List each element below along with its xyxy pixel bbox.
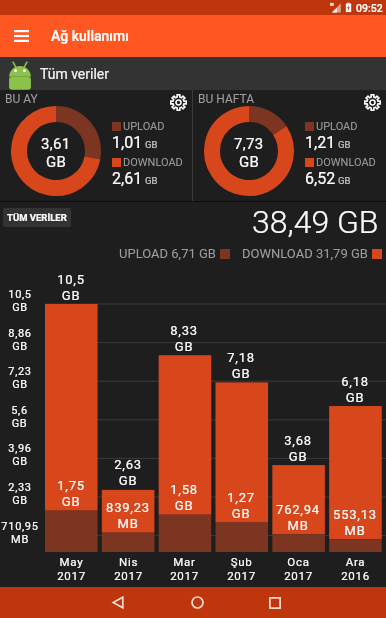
staticText: 2,33 GB xyxy=(8,481,32,507)
staticText: TÜM VERİLER xyxy=(7,212,67,223)
staticText: BU HAFTA xyxy=(198,92,255,106)
staticText: 6,18 GB xyxy=(341,374,369,405)
staticText: 1,58 GB xyxy=(170,482,198,513)
staticText: Oca 2017 xyxy=(284,555,313,583)
staticText: 38,49 GB xyxy=(252,203,379,241)
staticText: BU AY xyxy=(5,92,38,106)
staticText: 8,86 GB xyxy=(8,327,32,353)
button[interactable]: Menu xyxy=(0,15,42,57)
staticText: UPLOAD xyxy=(123,120,165,133)
staticText: GB xyxy=(145,175,158,186)
staticText: 1,75 GB xyxy=(57,478,85,509)
staticText: Ağ kullanımı xyxy=(51,28,129,44)
staticText: GB xyxy=(338,175,351,186)
staticText: GB xyxy=(338,139,351,150)
button[interactable]: Back xyxy=(96,587,140,618)
staticText: 5,6 GB xyxy=(11,404,28,430)
staticText: 2,63 GB xyxy=(114,457,142,488)
button[interactable]: Home xyxy=(175,587,219,618)
staticText: 10,5 GB xyxy=(8,288,32,314)
staticText: GB xyxy=(145,139,158,150)
staticText: 1,01 xyxy=(112,133,143,152)
staticText: UPLOAD xyxy=(316,120,358,133)
button[interactable]: TÜM VERİLER xyxy=(3,208,71,227)
staticText: 839,23 MB xyxy=(106,500,150,531)
staticText: May 2017 xyxy=(57,555,86,583)
staticText: DOWNLOAD xyxy=(123,156,183,169)
staticText: Ara 2016 xyxy=(341,555,370,583)
staticText: DOWNLOAD xyxy=(316,156,376,169)
staticText: 1,21 xyxy=(305,133,336,152)
staticText: 553,13 MB xyxy=(333,507,377,538)
staticText: 6,52 xyxy=(305,169,336,188)
staticText: 762,94 MB xyxy=(276,502,320,533)
button[interactable]: Settings xyxy=(362,92,382,112)
staticText: Şub 2017 xyxy=(227,555,256,583)
button[interactable]: Tüm veriler xyxy=(0,57,386,90)
staticText: 8,33 GB xyxy=(170,323,198,354)
staticText: 3,96 GB xyxy=(8,442,32,468)
button[interactable]: Settings xyxy=(168,92,188,112)
staticText: 7,73 xyxy=(234,135,264,153)
staticText: 7,18 GB xyxy=(227,350,255,381)
staticText: Nis 2017 xyxy=(114,555,143,583)
staticText: 3,61 xyxy=(41,135,71,153)
staticText: 1,27 GB xyxy=(227,490,255,521)
button[interactable]: Recents xyxy=(253,587,297,618)
staticText: 2,61 xyxy=(112,169,143,188)
staticText: 10,5 GB xyxy=(57,272,85,303)
staticText: GB xyxy=(239,153,260,171)
staticText: 3,68 GB xyxy=(284,433,312,464)
staticText: GB xyxy=(46,153,67,171)
staticText: Mar 2017 xyxy=(170,555,199,583)
staticText: Tüm veriler xyxy=(40,66,110,82)
staticText: UPLOAD 6,71 GB xyxy=(119,246,216,261)
staticText: 7,23 GB xyxy=(8,365,32,391)
staticText: 09:52 xyxy=(356,2,383,14)
staticText: 710,95 MB xyxy=(1,520,39,546)
staticText: DOWNLOAD 31,79 GB xyxy=(242,246,368,261)
